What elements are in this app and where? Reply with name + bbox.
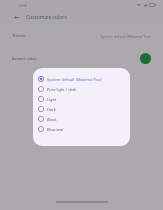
staticText: System default (Material You) xyxy=(100,34,151,39)
staticText: Dark xyxy=(47,107,56,112)
staticText: Accent color xyxy=(12,56,37,62)
button[interactable]: Pure light / dark xyxy=(33,84,130,94)
button[interactable]: Light xyxy=(33,94,130,104)
button[interactable]: Theme xyxy=(0,31,163,41)
staticText: Pure light / dark xyxy=(47,87,77,92)
staticText: Black xyxy=(47,117,57,122)
staticText: Blue-teal xyxy=(47,127,64,132)
button[interactable]: System default (Material You) xyxy=(33,74,130,84)
button[interactable]: Black xyxy=(33,114,130,124)
staticText: Light xyxy=(47,97,57,102)
staticText: 12:30 xyxy=(18,3,27,8)
staticText: Theme xyxy=(12,33,26,39)
staticText: System default (Material You) xyxy=(47,77,102,82)
button[interactable]: Blue-teal xyxy=(33,124,130,134)
staticText: Customize colors xyxy=(26,14,67,21)
button[interactable]: Accent color xyxy=(0,50,163,67)
button[interactable]: Back xyxy=(11,12,21,22)
button[interactable]: Dark xyxy=(33,104,130,114)
